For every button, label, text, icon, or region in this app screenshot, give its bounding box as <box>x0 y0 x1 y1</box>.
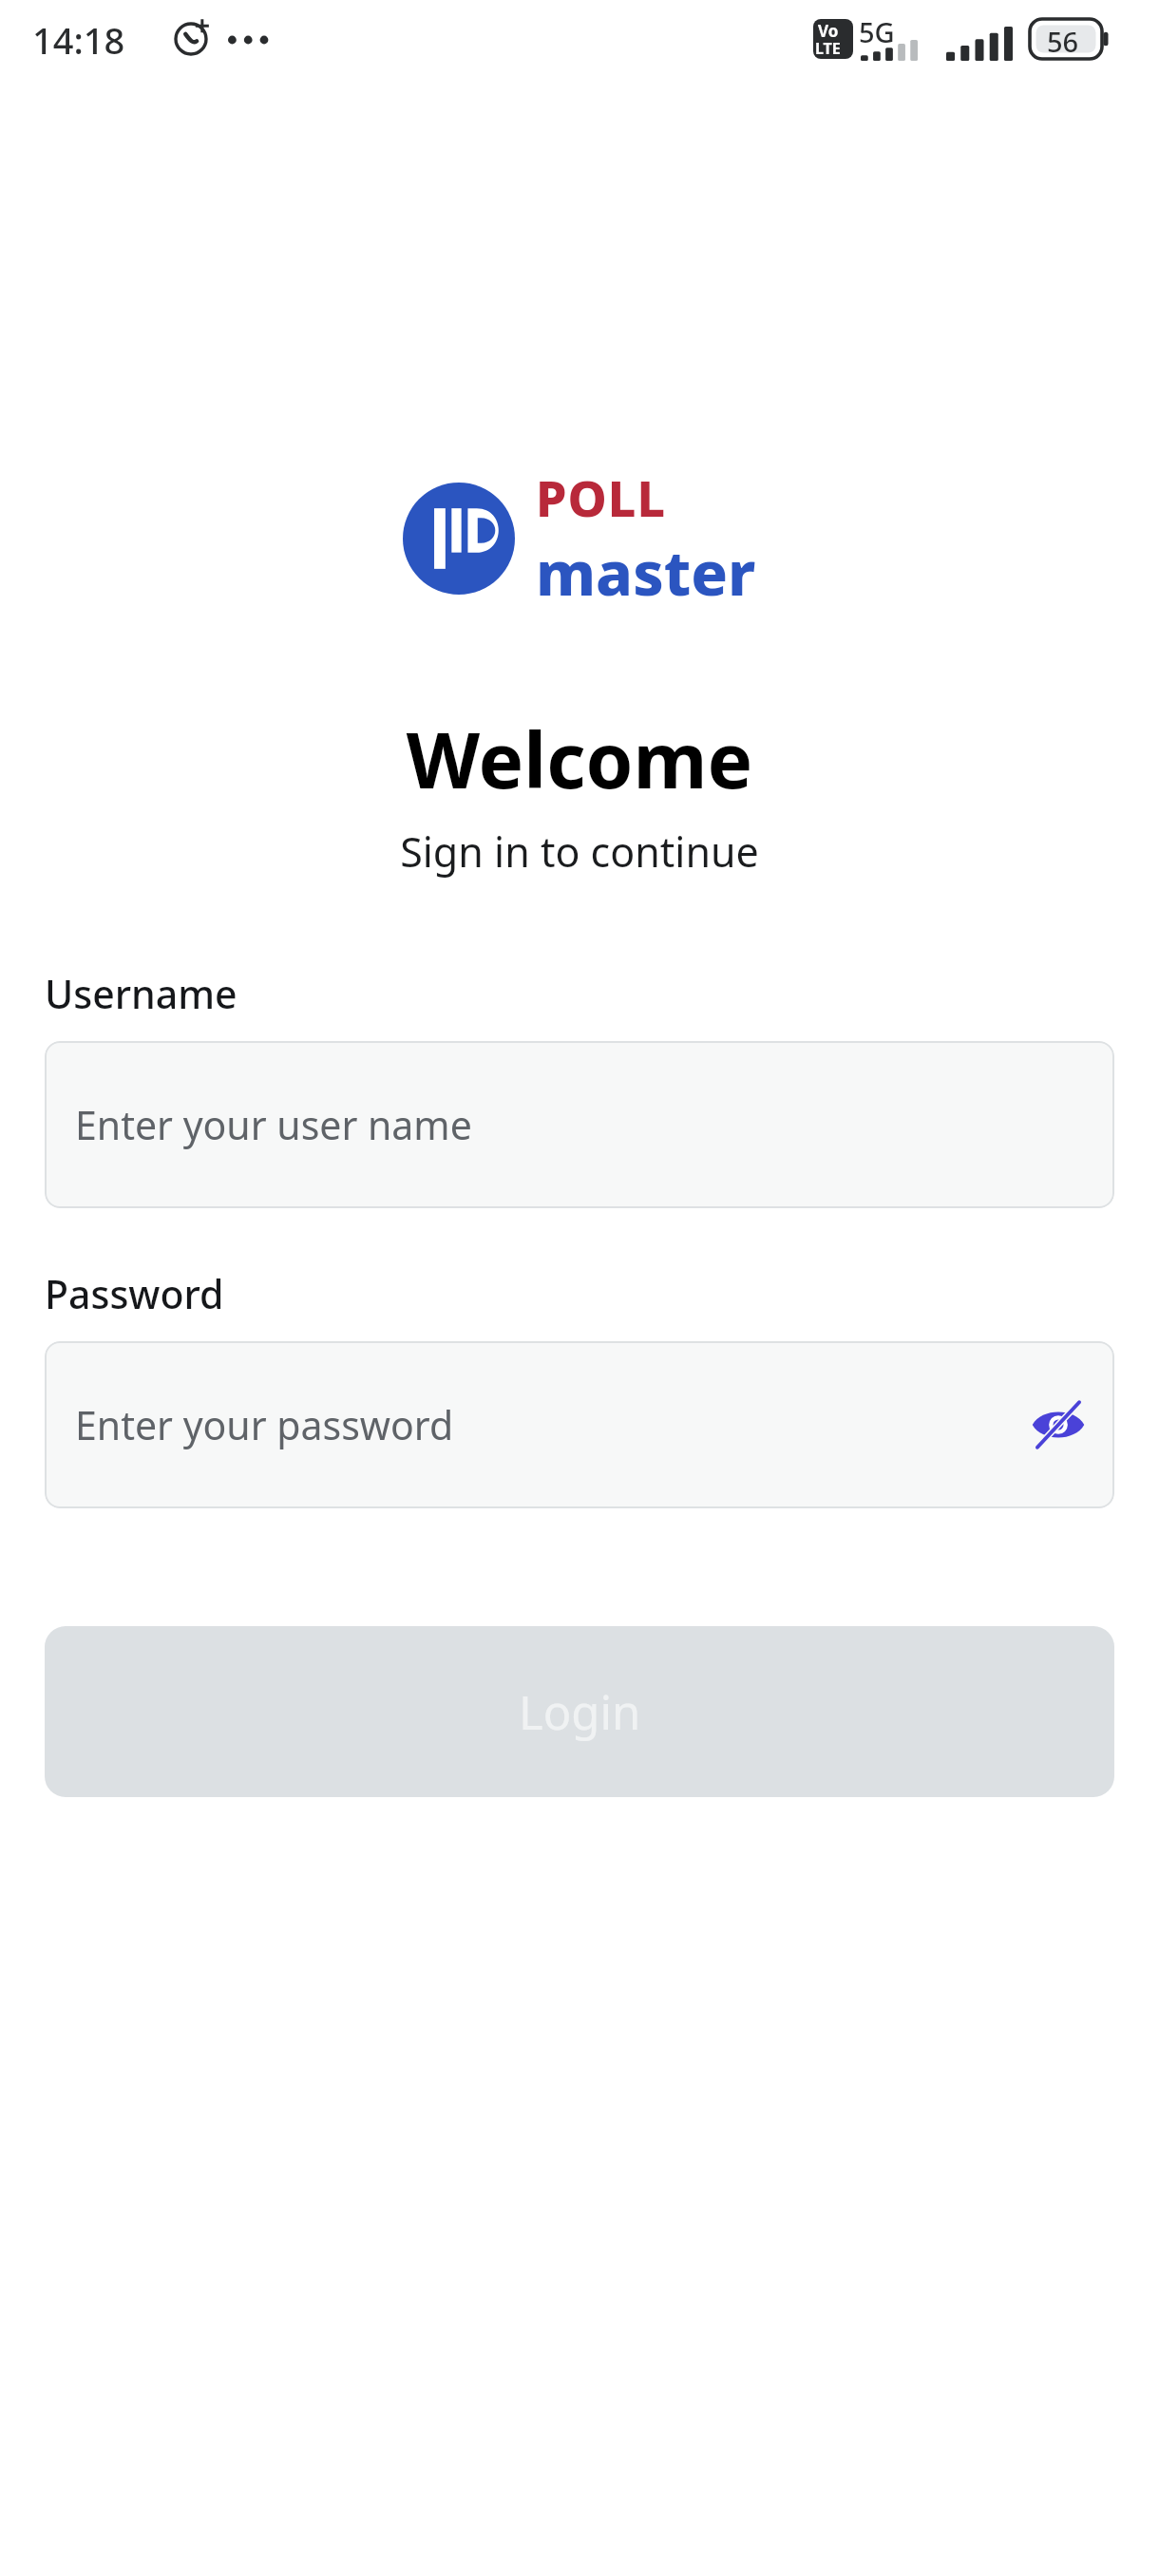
staticText: 5G <box>859 13 895 50</box>
staticText: Enter your user name <box>75 1098 1095 1151</box>
button[interactable]: Login <box>45 1626 1114 1797</box>
staticText: Login <box>519 1680 641 1744</box>
staticText: 14:18 <box>32 15 125 65</box>
staticText: Vo <box>818 20 839 42</box>
staticText: master <box>536 531 756 614</box>
button[interactable]: Enter your password <box>45 1341 1114 1508</box>
staticText: Enter your password <box>75 1398 1021 1451</box>
staticText: Welcome <box>0 707 1159 810</box>
staticText: 56 <box>1047 23 1079 60</box>
staticText: LTE <box>815 38 841 59</box>
button[interactable]: Show password <box>1021 1388 1095 1462</box>
staticText: POLL <box>536 464 667 531</box>
button[interactable]: Enter your user name <box>45 1041 1114 1208</box>
staticText: Username <box>45 967 237 1020</box>
staticText: Sign in to continue <box>0 824 1159 880</box>
staticText: Password <box>45 1267 224 1320</box>
